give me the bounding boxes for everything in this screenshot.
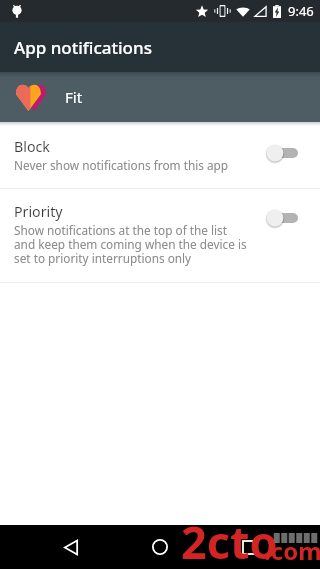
staticText: Fit: [65, 87, 83, 107]
button[interactable]: Recents: [227, 525, 271, 569]
button[interactable]: Toggle: [266, 209, 298, 227]
staticText: 2cto: [181, 511, 278, 569]
button[interactable]: Toggle: [266, 144, 298, 162]
staticText: Priority: [14, 202, 63, 221]
staticText: Never show notifications from this app: [14, 157, 229, 173]
staticText: Block: [14, 137, 50, 156]
staticText: 9:46: [288, 2, 314, 20]
button[interactable]: Block: [0, 122, 320, 188]
staticText: .com: [264, 534, 320, 567]
button[interactable]: Back: [49, 525, 93, 569]
staticText: App notifications: [14, 36, 152, 59]
button[interactable]: Home: [138, 525, 182, 569]
staticText: Show notifications at the top of the lis…: [14, 222, 247, 266]
button[interactable]: Fit: [0, 72, 320, 122]
button[interactable]: Priority: [0, 189, 320, 282]
